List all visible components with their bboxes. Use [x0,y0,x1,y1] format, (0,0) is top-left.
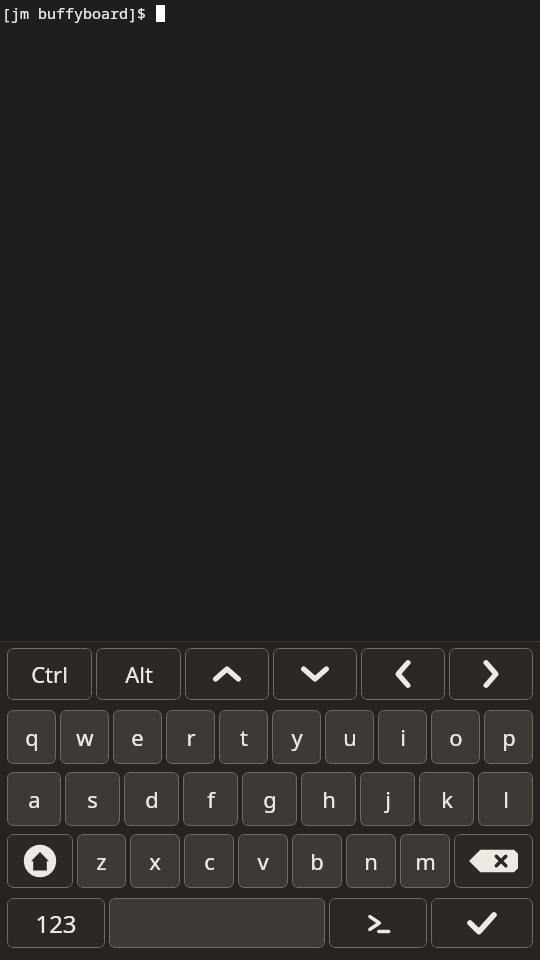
button[interactable]: y [272,710,321,764]
button[interactable]: Terminal prompt [329,898,427,948]
staticText: Alt [125,659,153,689]
staticText: i [400,722,406,752]
staticText: f [207,784,215,814]
staticText: e [131,722,144,752]
staticText: k [441,784,453,814]
button[interactable]: j [360,772,415,826]
button[interactable]: t [219,710,268,764]
staticText: r [186,722,196,752]
button[interactable]: l [478,772,533,826]
button[interactable]: Arrow right [449,648,533,700]
staticText: c [204,846,215,876]
staticText: b [310,846,324,876]
button[interactable]: Backspace [454,834,533,888]
staticText: t [240,722,248,752]
button[interactable]: Arrow down [273,648,357,700]
button[interactable]: s [65,772,120,826]
button[interactable]: e [113,710,162,764]
staticText: m [415,846,436,876]
staticText: a [28,784,41,814]
button[interactable]: Shift [7,834,73,888]
staticText: y [291,722,303,752]
button[interactable]: w [60,710,109,764]
button[interactable]: v [238,834,288,888]
staticText: w [76,722,94,752]
button[interactable]: u [325,710,374,764]
button[interactable]: Arrow left [361,648,445,700]
staticText: n [364,846,378,876]
button[interactable]: a [7,772,61,826]
button[interactable]: q [7,710,56,764]
button[interactable]: o [431,710,480,764]
button[interactable]: Arrow up [185,648,269,700]
staticText: z [96,846,107,876]
button[interactable]: d [124,772,179,826]
staticText: g [263,784,277,814]
staticText: d [145,784,159,814]
staticText: Ctrl [31,659,68,689]
staticText: s [87,784,98,814]
button[interactable]: Ctrl [7,648,92,700]
button[interactable]: i [378,710,427,764]
button[interactable]: Alt [96,648,181,700]
button[interactable]: n [346,834,396,888]
button[interactable]: c [184,834,234,888]
button[interactable]: f [183,772,238,826]
button[interactable]: b [292,834,342,888]
button[interactable]: x [130,834,180,888]
button[interactable]: h [301,772,356,826]
staticText: u [343,722,357,752]
staticText: p [502,722,516,752]
staticText: j [385,784,391,814]
staticText: v [257,846,269,876]
button[interactable]: g [242,772,297,826]
button[interactable]: r [166,710,215,764]
staticText: h [322,784,336,814]
staticText: l [503,784,509,814]
button[interactable]: 123 [7,898,105,948]
button[interactable]: Space [109,898,325,948]
staticText: 123 [35,907,77,940]
button[interactable]: z [77,834,126,888]
staticText: o [449,722,463,752]
button[interactable]: k [419,772,474,826]
button[interactable]: Enter [431,898,533,948]
staticText: q [25,722,39,752]
button[interactable]: p [484,710,533,764]
staticText: x [149,846,161,876]
staticText: [jm buffyboard]$ [2,3,156,23]
button[interactable]: m [400,834,450,888]
